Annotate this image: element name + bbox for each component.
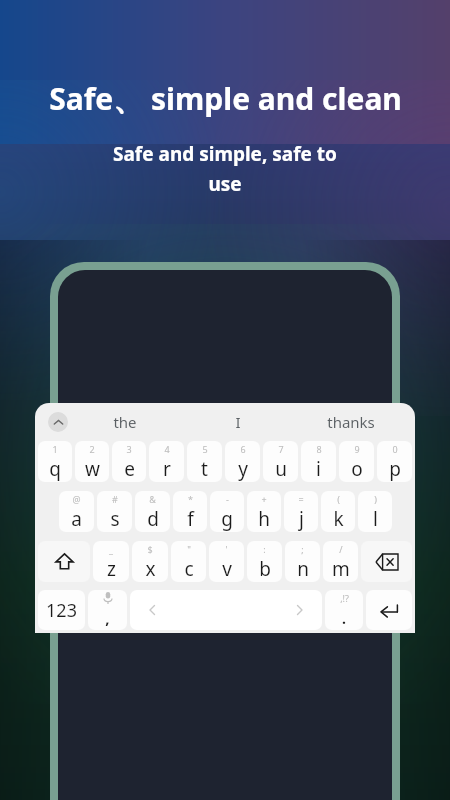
staticText: n (297, 556, 309, 582)
staticText: 8 (316, 443, 322, 455)
staticText: e (124, 456, 135, 482)
staticText: i (316, 456, 321, 482)
button[interactable]: 2 (75, 441, 109, 482)
staticText: Safe、 simple and clean (49, 78, 402, 119)
staticText: , (105, 608, 110, 628)
button[interactable]: ; (285, 541, 320, 582)
staticText: y (238, 456, 248, 482)
staticText: b (259, 556, 271, 582)
staticText: 123 (46, 598, 77, 623)
staticText: ) (374, 493, 377, 505)
staticText: k (333, 506, 344, 532)
button[interactable]: = (284, 491, 318, 532)
staticText: @ (72, 493, 81, 505)
staticText: r (163, 456, 171, 482)
button[interactable]: Expand suggestions (48, 412, 68, 432)
other: Backspace (361, 541, 412, 582)
staticText: w (85, 456, 100, 482)
staticText: c (184, 556, 194, 582)
staticText: Safe and simple, safe to use (113, 141, 337, 196)
staticText: 0 (392, 443, 398, 455)
button[interactable]: the (68, 403, 181, 441)
button[interactable]: 8 (301, 441, 336, 482)
button[interactable]: ' (209, 541, 244, 582)
button[interactable]: * (173, 491, 207, 532)
staticText: o (351, 456, 363, 482)
button[interactable]: ( (321, 491, 355, 532)
staticText: . (342, 609, 346, 628)
staticText: l (373, 506, 378, 532)
button[interactable]: Voice input and comma (88, 590, 127, 630)
staticText: 6 (240, 443, 246, 455)
staticText: a (71, 506, 82, 532)
staticText: s (110, 506, 120, 532)
other: Punctuation (325, 590, 363, 630)
staticText: d (147, 506, 159, 532)
button[interactable]: 9 (339, 441, 374, 482)
button[interactable]: & (135, 491, 170, 532)
staticText: : (263, 543, 266, 555)
staticText: thanks (327, 412, 375, 432)
staticText: - (226, 493, 229, 505)
staticText: m (332, 556, 350, 582)
button[interactable]: / (323, 541, 358, 582)
staticText: 1 (52, 443, 58, 455)
staticText: ,!? (340, 592, 349, 604)
staticText: 5 (202, 443, 208, 455)
button[interactable]: $ (132, 541, 168, 582)
staticText: ' (225, 543, 228, 555)
staticText: v (222, 556, 232, 582)
button[interactable]: # (97, 491, 132, 532)
button[interactable]: thanks (294, 403, 407, 441)
button[interactable]: 0 (377, 441, 412, 482)
other: Shift (38, 541, 90, 582)
staticText: # (112, 493, 118, 505)
staticText: g (221, 506, 233, 532)
staticText: _ (109, 543, 113, 555)
button[interactable]: _ (93, 541, 129, 582)
staticText: 7 (278, 443, 284, 455)
button[interactable]: Space (130, 590, 322, 630)
staticText: f (187, 506, 194, 532)
staticText: + (261, 493, 267, 505)
staticText: p (389, 456, 401, 482)
staticText: / (339, 543, 343, 555)
button[interactable]: 5 (187, 441, 222, 482)
staticText: x (145, 556, 156, 582)
staticText: the (113, 412, 137, 432)
other: Voice input and comma (88, 590, 127, 630)
staticText: * (188, 493, 193, 505)
staticText: 9 (354, 443, 360, 455)
button[interactable]: Backspace (361, 541, 412, 582)
button[interactable]: 6 (225, 441, 260, 482)
staticText: u (275, 456, 287, 482)
staticText: $ (147, 543, 153, 555)
staticText: I (235, 412, 241, 432)
button[interactable]: 7 (263, 441, 298, 482)
button[interactable]: Punctuation (325, 590, 363, 630)
button[interactable]: : (247, 541, 282, 582)
staticText: h (258, 506, 270, 532)
button[interactable]: Shift (38, 541, 90, 582)
staticText: 2 (89, 443, 95, 455)
staticText: ( (337, 493, 340, 505)
staticText: = (298, 493, 304, 505)
staticText: 4 (164, 443, 170, 455)
button[interactable]: 123 (38, 590, 85, 630)
button[interactable]: @ (59, 491, 94, 532)
button[interactable]: ) (358, 491, 392, 532)
staticText: " (187, 543, 191, 555)
button[interactable]: I (181, 403, 294, 441)
staticText: z (107, 556, 116, 582)
button[interactable]: - (210, 491, 244, 532)
button[interactable]: " (171, 541, 206, 582)
staticText: j (299, 506, 304, 532)
button[interactable]: 1 (38, 441, 72, 482)
staticText: t (201, 456, 208, 482)
button[interactable]: Enter (366, 590, 412, 630)
other: Enter (366, 590, 412, 630)
button[interactable]: 4 (149, 441, 184, 482)
button[interactable]: 3 (112, 441, 146, 482)
staticText: 3 (126, 443, 132, 455)
button[interactable]: + (247, 491, 281, 532)
